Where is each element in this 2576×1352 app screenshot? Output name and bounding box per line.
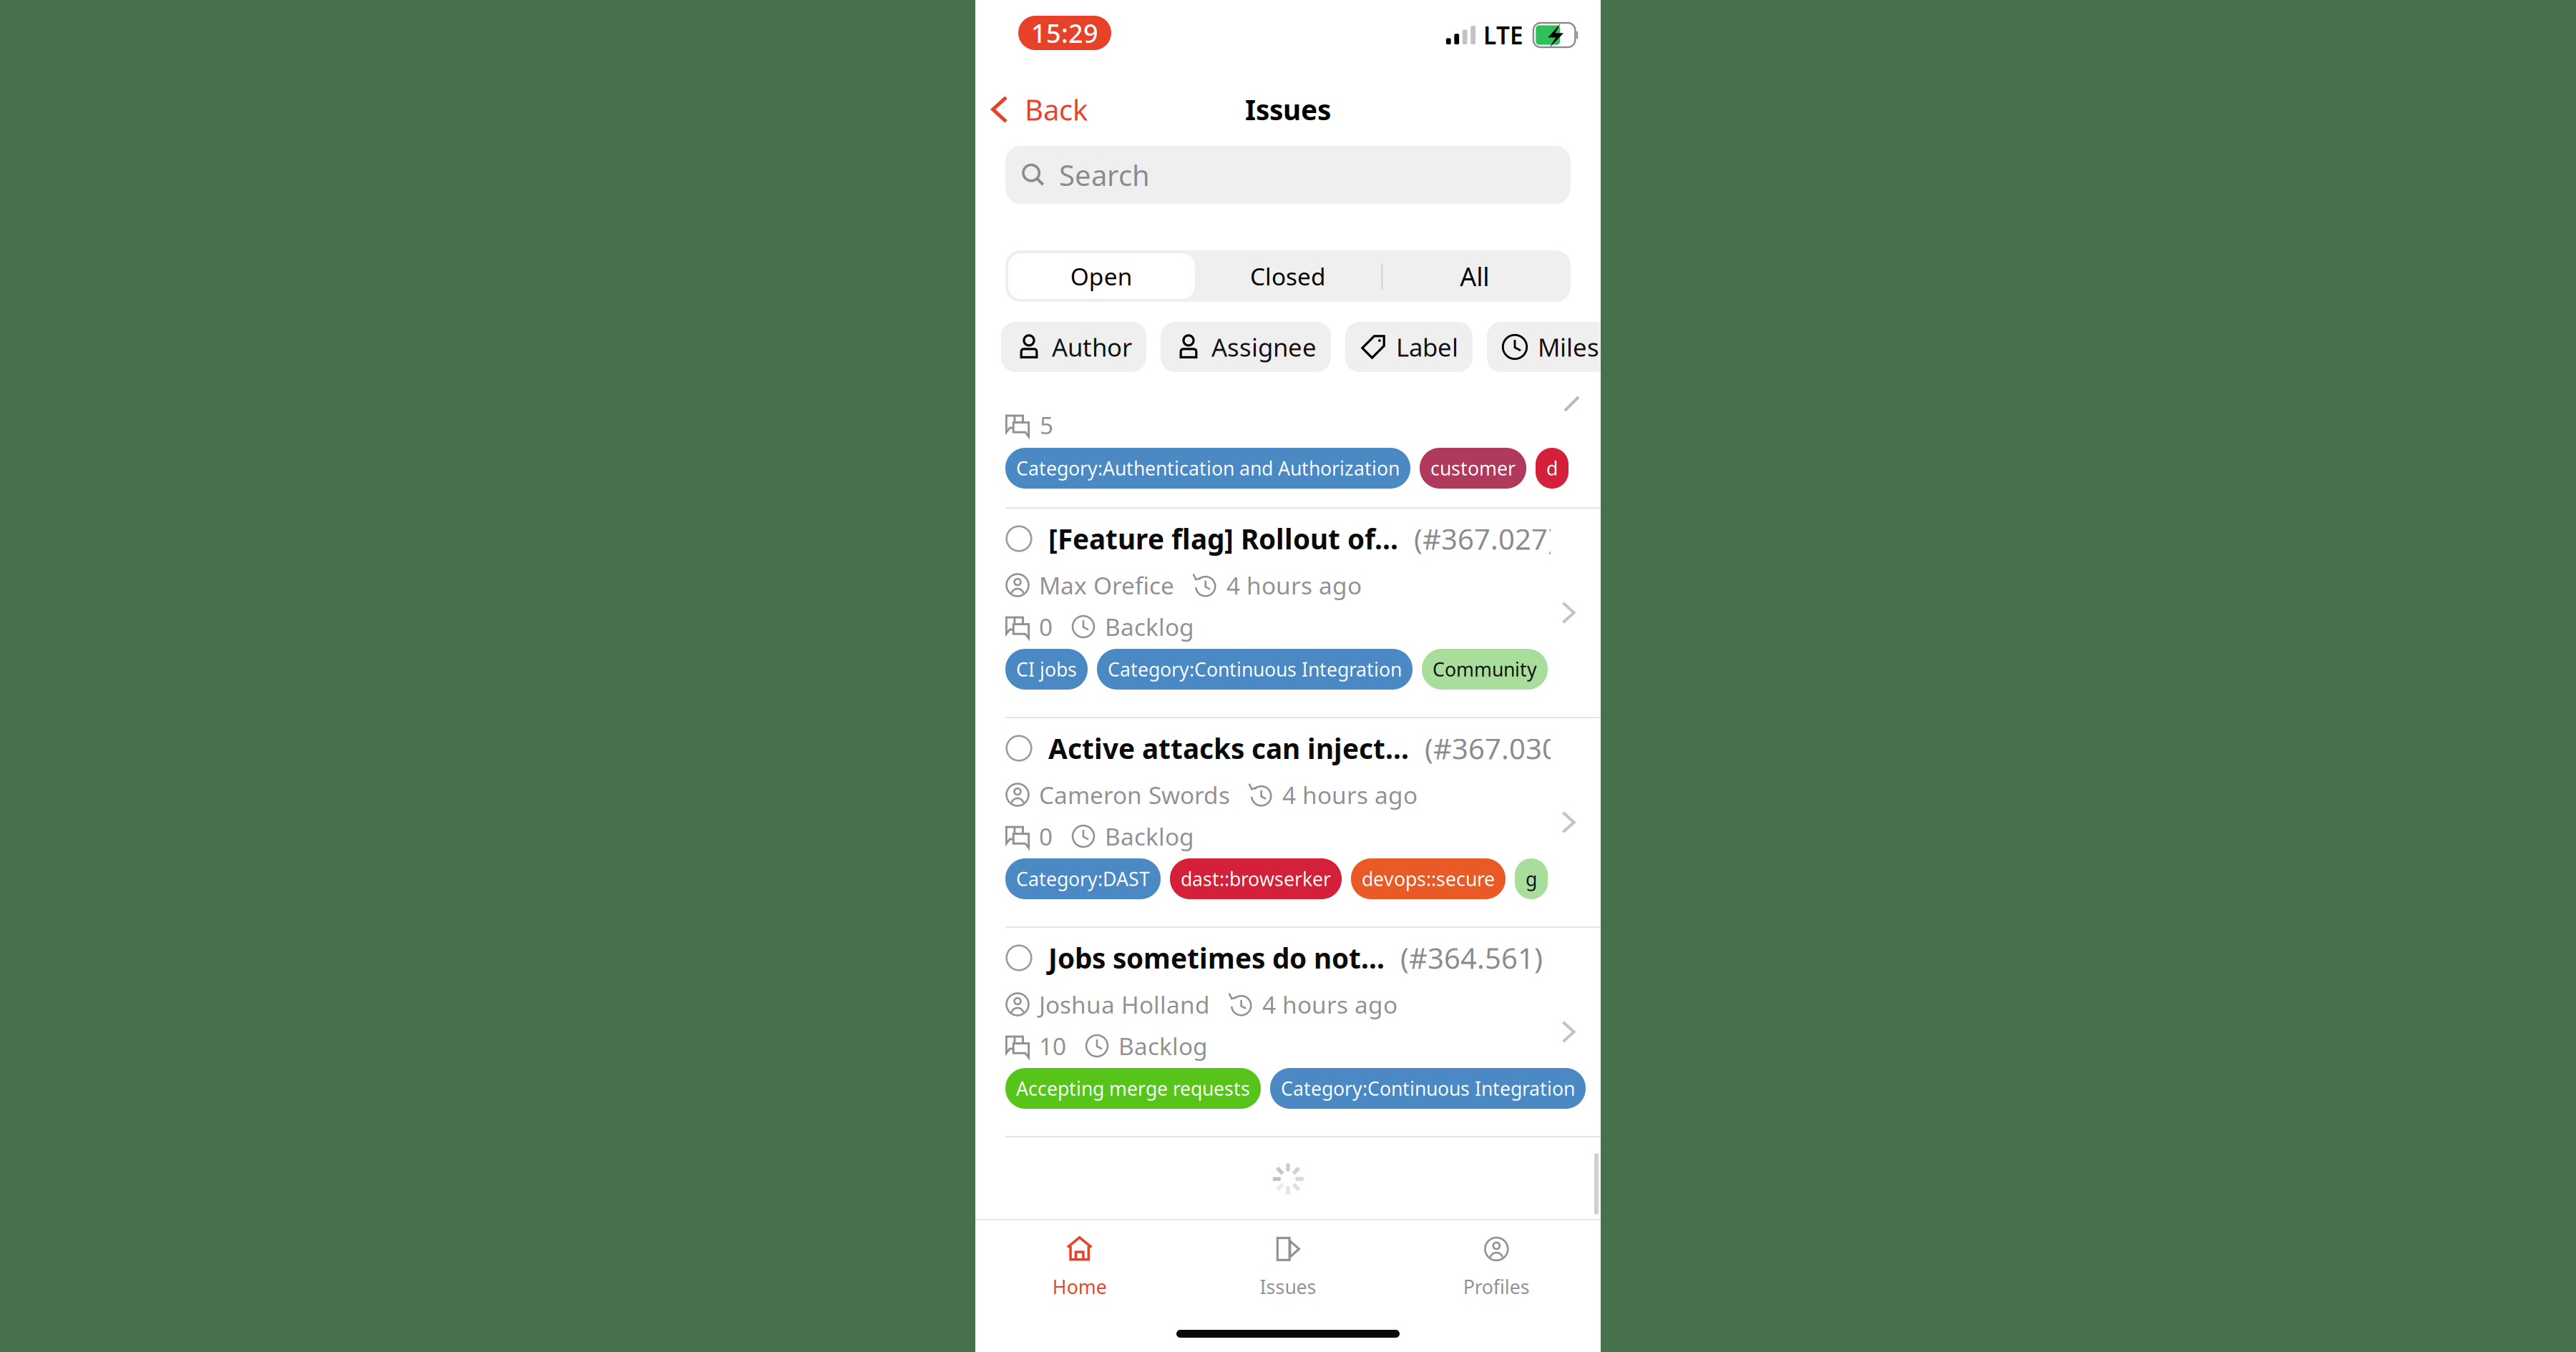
staticText: Backlog	[1105, 611, 1194, 643]
staticText: Cameron Swords	[1039, 779, 1230, 811]
button[interactable]: Assignee	[1161, 322, 1331, 372]
button[interactable]: Back	[986, 83, 1088, 136]
staticText: customer	[1430, 456, 1516, 481]
button[interactable]: Issue, 5 comments	[975, 386, 1601, 507]
staticText: Issues	[1260, 1274, 1316, 1299]
staticText: (#364.561)	[1400, 939, 1543, 977]
staticText: Home	[1052, 1274, 1107, 1299]
button[interactable]: Author	[1001, 322, 1146, 372]
staticText: Closed	[1250, 260, 1326, 292]
staticText: devops::secure	[1362, 866, 1495, 891]
staticText: Community	[1433, 657, 1537, 682]
staticText: CI jobs	[1016, 657, 1077, 682]
staticText: Accepting merge requests	[1016, 1076, 1250, 1101]
staticText: [Feature flag] Rollout of...	[1048, 520, 1398, 557]
button[interactable]: Miles	[1487, 322, 1614, 372]
button[interactable]: Jobs sometimes do not... (#364.561)	[975, 928, 1601, 1136]
staticText: 4 hours ago	[1282, 779, 1418, 811]
staticText: Search	[1059, 156, 1150, 194]
staticText: 4 hours ago	[1262, 989, 1397, 1020]
button[interactable]: Search	[975, 142, 1601, 212]
staticText: Max Orefice	[1039, 569, 1174, 601]
button[interactable]: Open	[1008, 253, 1195, 299]
staticText: Back	[1025, 90, 1088, 128]
staticText: (#367.027)	[1414, 520, 1556, 558]
staticText: dast::browserker	[1181, 866, 1331, 891]
staticText: g	[1526, 866, 1537, 891]
staticText: d	[1546, 456, 1558, 481]
staticText: 0	[1039, 611, 1053, 643]
staticText: Label	[1396, 330, 1458, 363]
button[interactable]: [Feature flag] Rollout of... (#367.027)	[975, 509, 1601, 717]
button[interactable]: Issues	[1184, 1235, 1392, 1299]
staticText: 4 hours ago	[1226, 569, 1362, 601]
button[interactable]: Label	[1345, 322, 1473, 372]
button[interactable]: All	[1381, 253, 1568, 299]
button[interactable]: Home	[975, 1235, 1184, 1299]
staticText: Joshua Holland	[1039, 989, 1210, 1020]
staticText: Category:Authentication and Authorizatio…	[1016, 456, 1400, 481]
staticText: 0	[1039, 820, 1053, 852]
staticText: Jobs sometimes do not...	[1048, 939, 1385, 976]
button[interactable]: Active attacks can inject... (#367.030)	[975, 718, 1601, 926]
staticText: Backlog	[1118, 1030, 1208, 1062]
staticText: Open	[1070, 260, 1133, 292]
staticText: 15:29	[1031, 16, 1098, 50]
staticText: 5	[1040, 409, 1053, 441]
staticText: All	[1460, 259, 1489, 293]
staticText: 10	[1039, 1030, 1066, 1062]
staticText: Category:Continuous Integration	[1281, 1076, 1575, 1101]
staticText: Miles	[1538, 330, 1599, 363]
staticText: Backlog	[1105, 820, 1194, 852]
staticText: (#367.030)	[1425, 729, 1567, 767]
staticText: Profiles	[1463, 1274, 1530, 1299]
button[interactable]: Closed	[1195, 253, 1381, 299]
staticText: Issues	[1245, 91, 1331, 128]
staticText: Author	[1052, 330, 1132, 363]
staticText: Category:DAST	[1016, 866, 1150, 891]
staticText: LTE	[1483, 19, 1523, 51]
staticText: Assignee	[1211, 330, 1317, 363]
staticText: Category:Continuous Integration	[1108, 657, 1402, 682]
button[interactable]: Profiles	[1392, 1235, 1601, 1299]
staticText: Active attacks can inject...	[1048, 730, 1409, 767]
